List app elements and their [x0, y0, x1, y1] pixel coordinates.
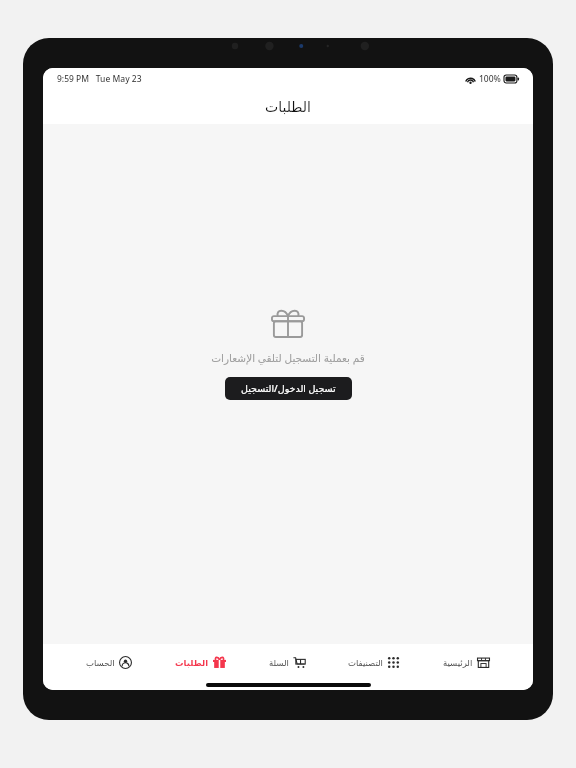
button[interactable]: Categories: [342, 652, 406, 673]
staticText: الطلبات: [265, 99, 311, 115]
button[interactable]: Account: [80, 652, 138, 673]
staticText: الرئيسية: [443, 658, 473, 668]
button[interactable]: Cart: [263, 652, 312, 673]
staticText: الحساب: [86, 658, 115, 668]
staticText: الطلبات: [175, 658, 209, 668]
button[interactable]: Orders: [169, 652, 232, 673]
staticText: تسجيل الدخول/التسجيل: [241, 382, 336, 395]
staticText: 100%: [479, 73, 501, 85]
staticText: السلة: [269, 658, 289, 668]
staticText: التصنيفات: [348, 658, 383, 668]
button[interactable]: Home: [437, 652, 496, 673]
staticText: قم بعملية التسجيل لتلقي الإشعارات: [211, 351, 365, 365]
button[interactable]: تسجيل الدخول/التسجيل: [225, 377, 352, 400]
staticText: 9:59 PM Tue May 23: [57, 73, 142, 85]
